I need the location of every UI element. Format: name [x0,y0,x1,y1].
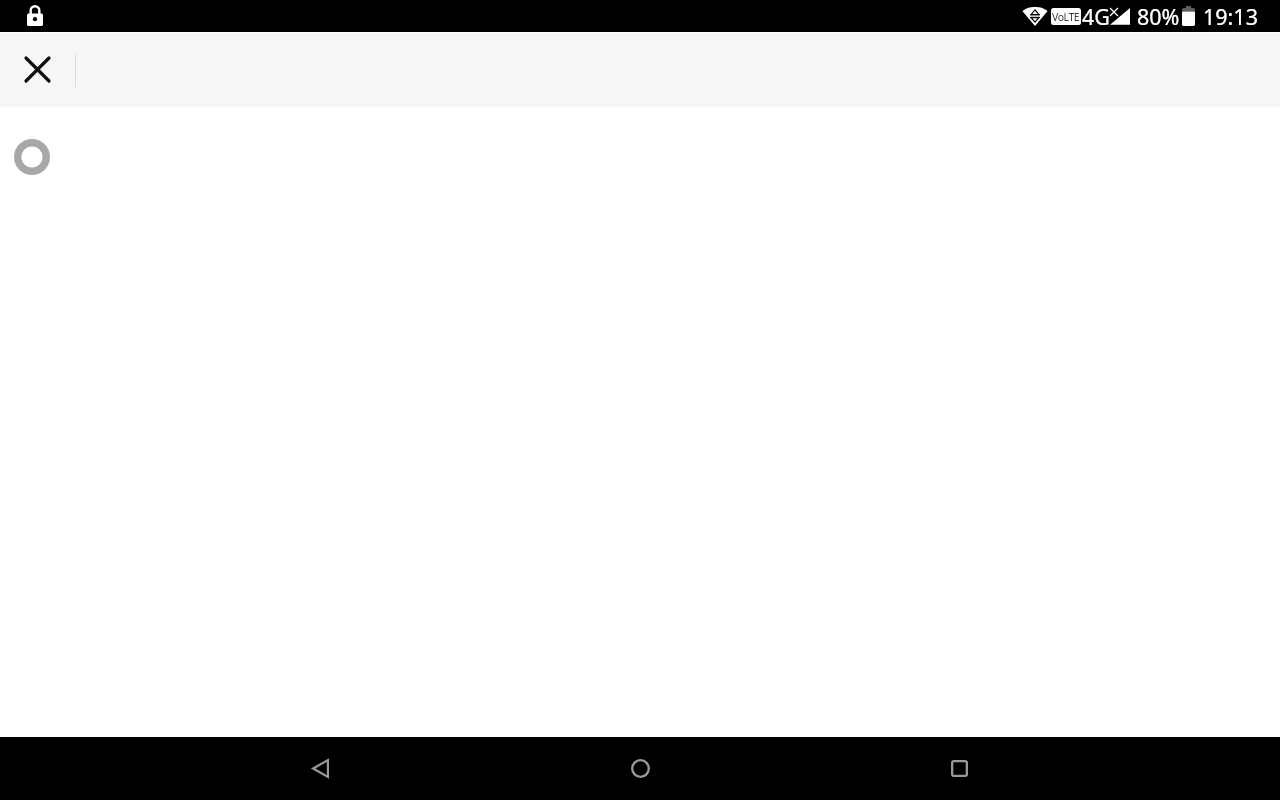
button[interactable]: Back [288,737,352,800]
button[interactable]: Close [13,45,62,94]
staticText: 19:13 [1203,2,1258,31]
button[interactable]: Recents [927,737,991,800]
staticText: 80% [1137,2,1180,31]
staticText: VoLTE [1052,10,1080,24]
button[interactable]: Home [608,737,672,800]
staticText: 4G [1082,2,1110,31]
